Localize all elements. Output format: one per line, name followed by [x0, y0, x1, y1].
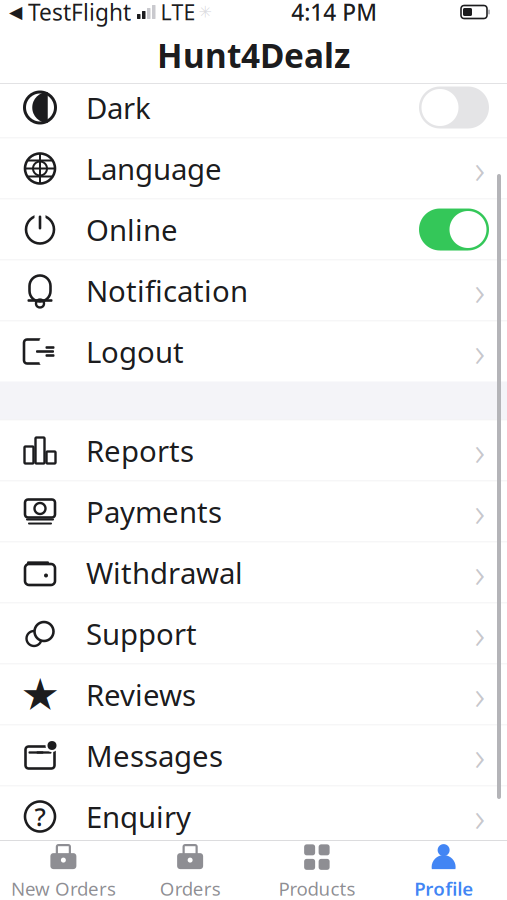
staticText: Enquiry [86, 797, 191, 836]
staticText: › [474, 424, 485, 477]
staticText: ✳ [198, 3, 211, 21]
staticText: Withdrawal [86, 553, 243, 592]
staticText: TestFlight [22, 0, 131, 27]
button[interactable]: ★ [0, 664, 507, 724]
staticText: Online [86, 210, 178, 249]
staticText: › [474, 264, 485, 317]
staticText: › [474, 729, 485, 782]
button[interactable]: Online [0, 199, 507, 259]
staticText: Orders [160, 876, 221, 900]
staticText: Reports [86, 431, 194, 470]
staticText: ★ [20, 669, 59, 719]
button[interactable]: Payments [0, 481, 507, 541]
staticText: Profile [414, 876, 473, 900]
staticText: › [474, 546, 485, 599]
staticText: LTE [160, 0, 195, 26]
button[interactable]: Messages [0, 725, 507, 785]
staticText: › [474, 325, 485, 378]
staticText: ◀ [9, 2, 22, 22]
staticText: Reviews [86, 675, 196, 714]
staticText: New Orders [11, 876, 116, 900]
staticText: 4:14 PM [291, 0, 377, 27]
button[interactable]: ? [0, 786, 507, 846]
staticText: Messages [86, 736, 223, 775]
button[interactable]: Logout [0, 321, 507, 381]
staticText: Dark [86, 88, 151, 127]
staticText: Language [86, 149, 222, 188]
staticText: Support [86, 614, 197, 653]
button[interactable]: Language [0, 138, 507, 198]
staticText: ? [34, 800, 45, 833]
staticText: Logout [86, 332, 184, 371]
button[interactable]: Support [0, 603, 507, 663]
staticText: › [474, 485, 485, 538]
button[interactable]: Dark [0, 77, 507, 137]
button[interactable]: Notification [0, 260, 507, 320]
staticText: › [474, 142, 485, 195]
button[interactable]: New Orders [0, 841, 127, 900]
button[interactable]: Products [253, 841, 380, 900]
staticText: Hunt4Dealz [157, 33, 350, 77]
button[interactable]: Profile [380, 841, 507, 900]
staticText: Payments [86, 492, 222, 531]
button[interactable]: Orders [127, 841, 254, 900]
staticText: Notification [86, 271, 248, 310]
staticText: › [474, 607, 485, 660]
button[interactable]: Reports [0, 420, 507, 480]
staticText: › [474, 668, 485, 721]
staticText: Products [278, 876, 355, 900]
staticText: › [474, 790, 485, 843]
button[interactable]: Withdrawal [0, 542, 507, 602]
